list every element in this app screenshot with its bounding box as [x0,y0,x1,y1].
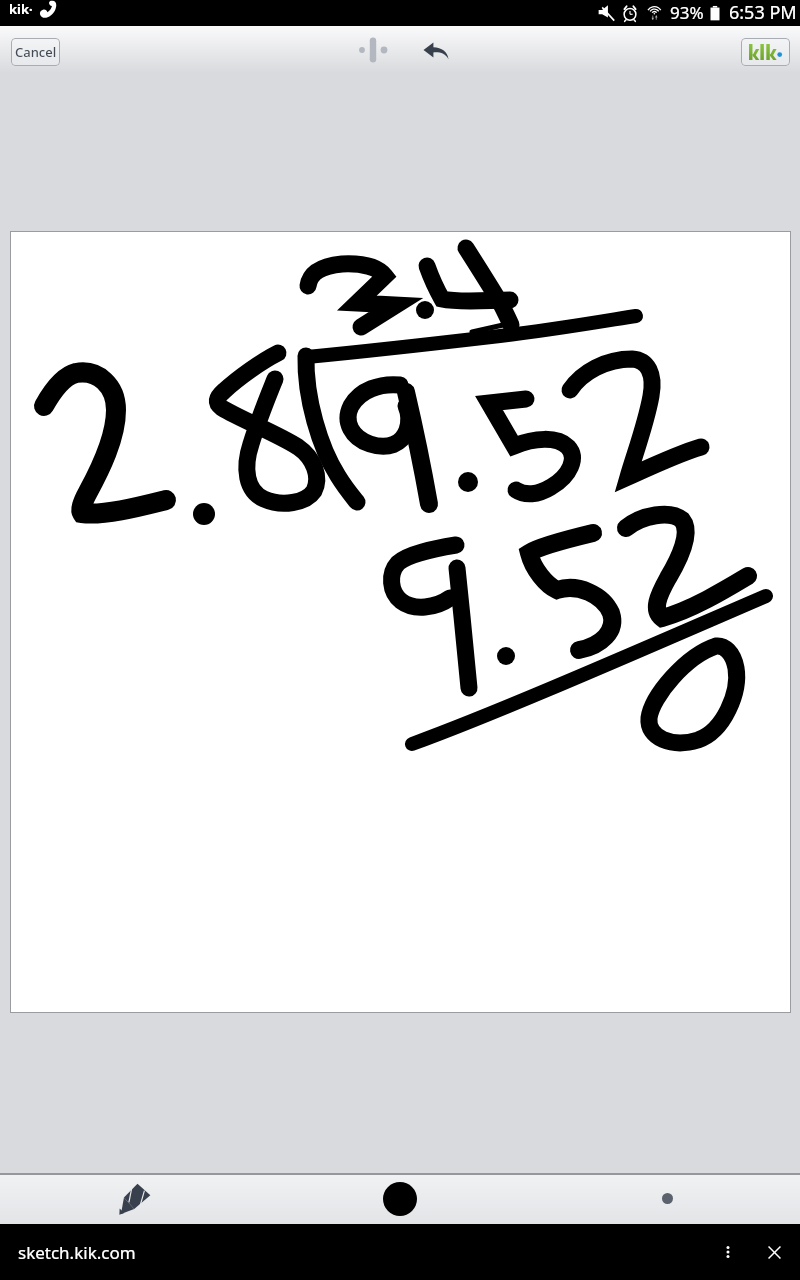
staticText: 93% [670,1,704,24]
button[interactable]: Close [751,1224,797,1280]
staticText: Cancel [15,43,57,61]
button[interactable]: Undo [413,26,459,73]
staticText: kik· [9,0,33,18]
button[interactable]: Cancel [11,38,60,66]
button[interactable]: More options [705,1224,751,1280]
button[interactable]: Pen tool [104,1173,166,1224]
button[interactable]: kik [741,38,790,66]
button[interactable]: Brush size small [636,1173,698,1224]
button[interactable]: Brush size [351,26,395,73]
staticText: 6:53 PM [729,0,797,25]
button[interactable]: Colour black [369,1173,431,1224]
staticText: sketch.kik.com [18,1241,136,1264]
